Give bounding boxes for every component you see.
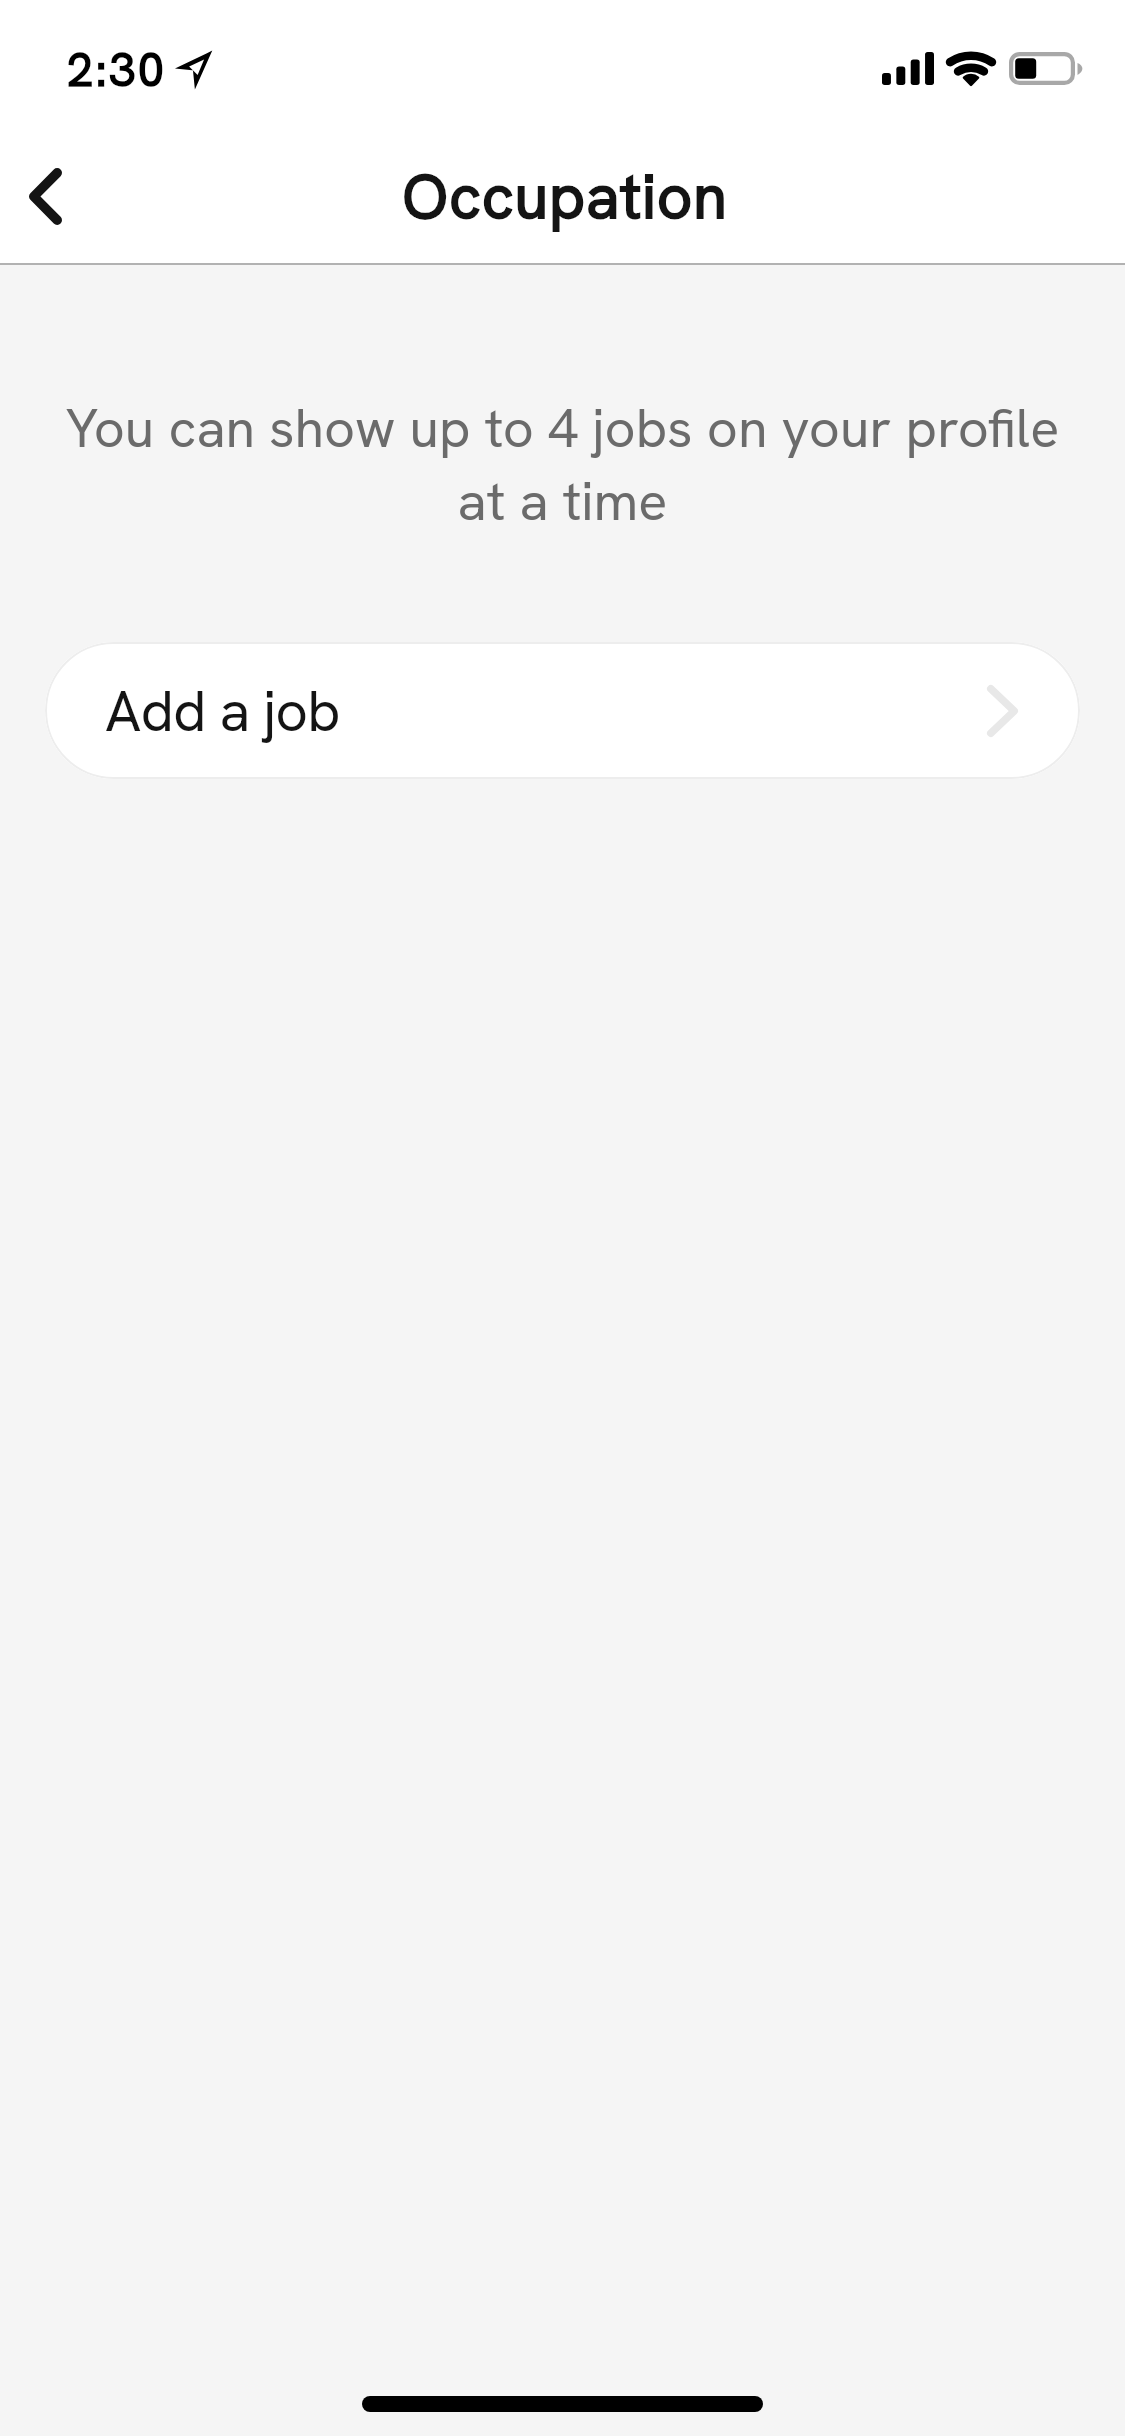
- staticText: 2:30: [67, 39, 167, 100]
- staticText: Add a job: [105, 674, 340, 748]
- button[interactable]: Back: [0, 126, 105, 266]
- button[interactable]: Add a job: [45, 642, 1080, 779]
- staticText: Occupation: [402, 156, 728, 237]
- staticText: You can show up to 4 jobs on your profil…: [45, 393, 1080, 536]
